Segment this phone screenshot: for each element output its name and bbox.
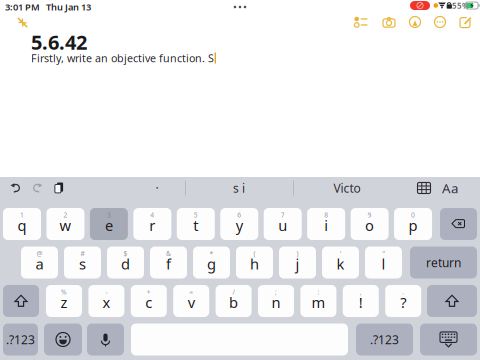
staticText: d — [121, 254, 130, 273]
staticText: ; — [275, 287, 277, 296]
staticText: z — [60, 292, 67, 312]
button[interactable]: shift — [3, 285, 39, 317]
button[interactable]: ( — [236, 246, 273, 278]
button[interactable]: 2 — [46, 208, 84, 240]
button[interactable]: ‘ — [322, 246, 359, 278]
button[interactable]: 4 — [133, 208, 171, 240]
staticText: ? — [400, 292, 406, 312]
staticText: Victo — [333, 180, 360, 196]
staticText: m — [311, 292, 325, 312]
button[interactable]: · — [129, 177, 184, 199]
staticText: 9 — [368, 210, 372, 219]
staticText: n — [271, 292, 280, 312]
staticText: 2 — [63, 210, 67, 219]
button[interactable]: % — [46, 285, 82, 317]
button[interactable]: : — [300, 285, 336, 317]
staticText: 4 — [150, 210, 154, 219]
button[interactable]: space — [131, 323, 348, 355]
staticText: # — [80, 249, 84, 258]
button[interactable]: # — [64, 246, 101, 278]
button[interactable]: / — [216, 285, 252, 317]
button[interactable]: Redo — [26, 177, 48, 199]
button[interactable]: Format — [439, 177, 461, 199]
button[interactable]: numbers — [356, 323, 413, 355]
button[interactable]: numbers — [3, 323, 38, 355]
button[interactable]: @ — [21, 246, 58, 278]
staticText: = — [189, 287, 193, 296]
staticText: u — [278, 215, 287, 235]
staticText: Firstly, write an objective function. S — [31, 51, 214, 65]
staticText: @ — [36, 249, 42, 258]
staticText: 8 — [324, 210, 328, 219]
staticText: i — [324, 215, 328, 235]
staticText: ( — [253, 249, 255, 258]
button[interactable]: Undo — [5, 177, 27, 199]
staticText: v — [188, 292, 195, 312]
staticText: e — [105, 215, 113, 235]
button[interactable]: New Note — [454, 11, 478, 33]
staticText: 5 — [194, 210, 198, 219]
button[interactable]: Victo — [297, 177, 397, 199]
button[interactable]: 3 — [90, 208, 128, 240]
button[interactable]: shift — [427, 285, 477, 317]
button[interactable]: ; — [258, 285, 294, 317]
staticText: 0 — [411, 210, 415, 219]
staticText: 6 — [237, 210, 241, 219]
button[interactable]: 8 — [307, 208, 345, 240]
button[interactable]: ) — [279, 246, 316, 278]
staticText: + — [147, 287, 151, 296]
staticText: f — [166, 254, 171, 273]
button[interactable]: 6 — [220, 208, 258, 240]
staticText: 3 — [107, 210, 111, 219]
staticText: , — [360, 287, 362, 296]
staticText: . — [402, 287, 404, 296]
staticText: r — [149, 215, 155, 235]
staticText: 7 — [281, 210, 285, 219]
button[interactable]: s i — [189, 177, 289, 199]
button[interactable]: & — [150, 246, 187, 278]
staticText: x — [102, 292, 110, 312]
staticText: / — [233, 287, 235, 296]
staticText: Aa — [442, 179, 458, 197]
button[interactable]: Paste — [48, 177, 70, 199]
button[interactable]: + — [131, 285, 167, 317]
button[interactable]: = — [173, 285, 209, 317]
staticText: - — [105, 287, 107, 296]
button[interactable]: Delete — [440, 208, 477, 240]
button[interactable]: $ — [107, 246, 144, 278]
staticText: p — [409, 215, 418, 235]
staticText: 55% — [452, 0, 469, 11]
staticText: w — [59, 215, 71, 235]
staticText: o — [365, 215, 374, 235]
button[interactable]: 7 — [264, 208, 302, 240]
button[interactable]: . — [385, 285, 421, 317]
button[interactable]: More — [428, 11, 452, 33]
button[interactable]: return — [410, 246, 477, 278]
button[interactable]: 5 — [177, 208, 215, 240]
button[interactable]: 1 — [3, 208, 41, 240]
staticText: y — [236, 215, 243, 235]
staticText: h — [250, 254, 259, 273]
button[interactable]: Camera — [377, 11, 401, 33]
button[interactable]: - — [88, 285, 124, 317]
button[interactable]: , — [343, 285, 379, 317]
button[interactable]: Dictation — [87, 323, 124, 355]
button[interactable]: Checklist — [349, 11, 373, 33]
staticText: a — [35, 254, 43, 273]
button[interactable]: Exit Full Screen — [12, 12, 34, 34]
button[interactable]: 9 — [351, 208, 389, 240]
button[interactable]: Markup — [403, 11, 427, 33]
staticText: ” — [382, 249, 384, 258]
button[interactable]: Insert Table — [413, 177, 435, 199]
staticText: · — [155, 180, 158, 196]
staticText: s — [79, 254, 86, 273]
button[interactable]: Hide Keyboard — [420, 323, 477, 355]
button[interactable]: Emoji — [44, 323, 82, 355]
staticText: $ — [123, 249, 127, 258]
button[interactable]: * — [193, 246, 230, 278]
staticText: % — [61, 287, 67, 296]
staticText: t — [193, 215, 198, 235]
button[interactable]: ” — [365, 246, 402, 278]
staticText: .?123 — [6, 331, 35, 347]
button[interactable]: 0 — [394, 208, 432, 240]
